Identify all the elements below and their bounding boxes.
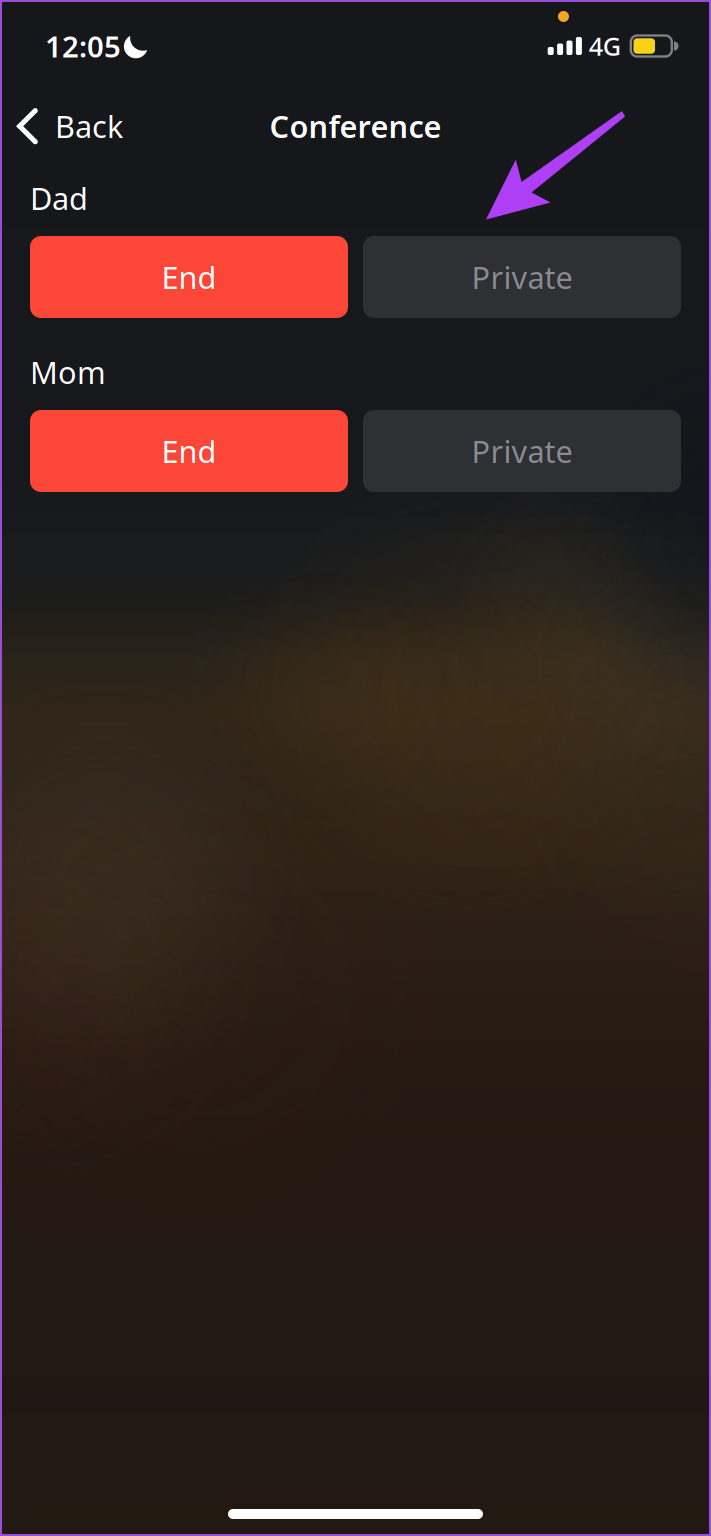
staticText: Dad (30, 178, 88, 218)
button[interactable]: Back (0, 96, 147, 156)
staticText: 4G (589, 29, 621, 63)
staticText: End (161, 257, 216, 297)
staticText: Private (471, 257, 572, 297)
button[interactable]: Private (363, 410, 681, 492)
staticText: 12:05 (45, 26, 121, 65)
staticText: Back (55, 106, 123, 146)
staticText: Conference (269, 106, 441, 146)
staticText: Private (471, 431, 572, 471)
button[interactable]: Private (363, 236, 681, 318)
staticText: End (161, 431, 216, 471)
button[interactable]: End (30, 410, 348, 492)
staticText: Mom (30, 352, 106, 392)
button[interactable]: End (30, 236, 348, 318)
